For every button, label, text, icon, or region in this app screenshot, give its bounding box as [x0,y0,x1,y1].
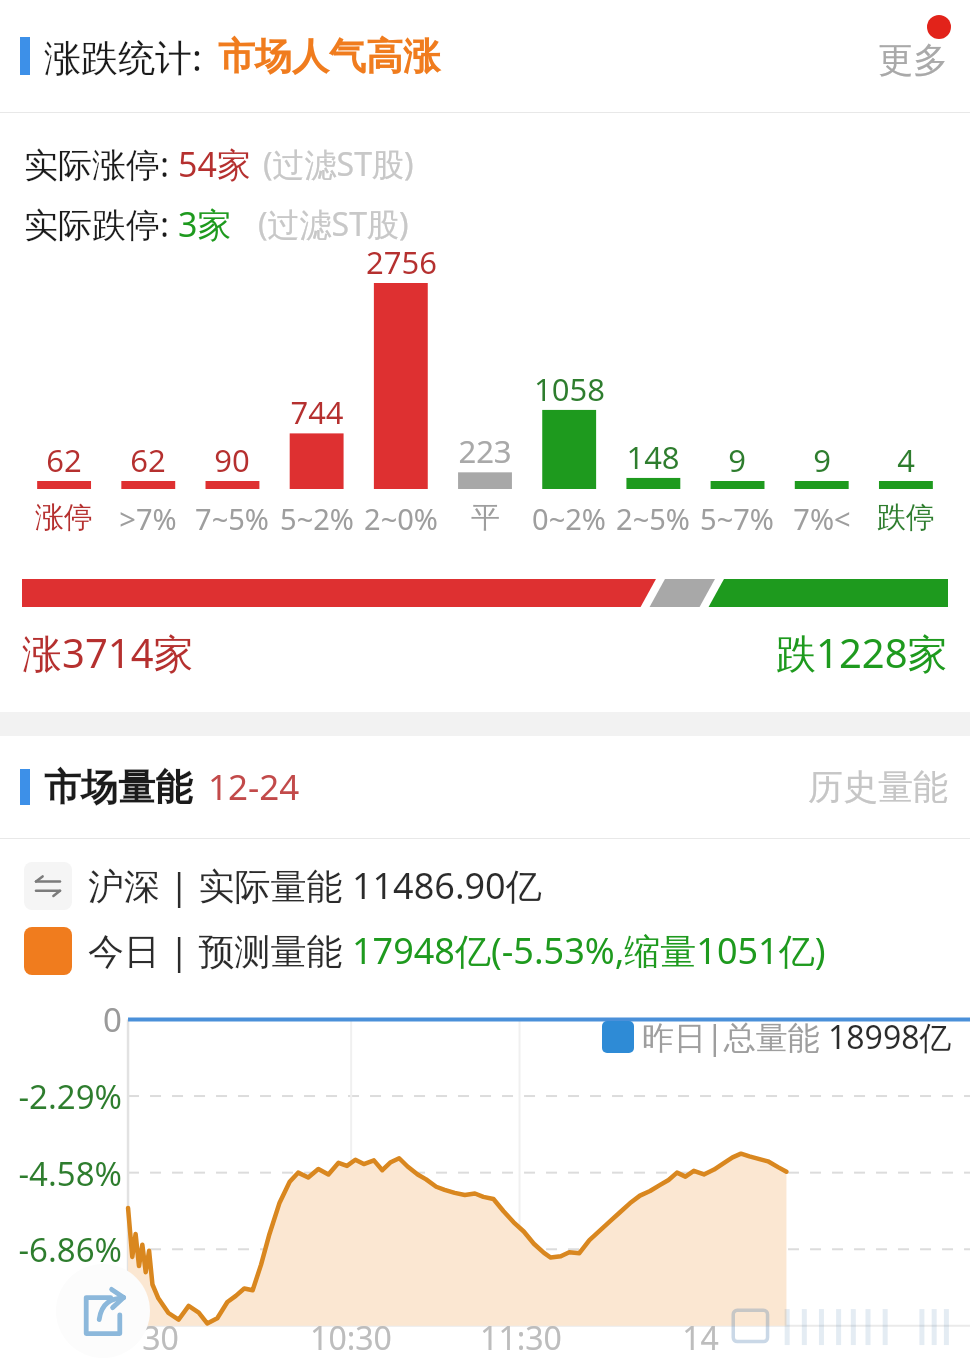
staticText: -6.86% [18,1227,122,1272]
button[interactable]: 平 [443,499,527,536]
staticText: >7% [119,499,177,538]
button[interactable]: 7~5% [190,499,274,538]
staticText: 0~2% [532,499,606,538]
staticText: 7%< [793,499,851,538]
staticText: 实际涨停: [24,141,178,187]
button[interactable]: 跌停 [864,499,948,536]
button[interactable]: 涨跌统计: [0,0,970,112]
staticText: 7~5% [195,499,269,538]
staticText: 更多 [878,38,948,82]
staticText: 涨3714家 [22,625,194,680]
staticText: 62 [46,439,82,481]
button[interactable]: 历史量能 [786,747,970,827]
staticText: 12-24 [208,763,300,811]
staticText: 14 [682,1316,719,1360]
staticText: (过滤ST股) [258,202,409,246]
staticText: 18998亿 [828,1015,952,1059]
button[interactable]: 7%< [780,499,864,538]
staticText: 涨跌统计: [44,31,202,82]
button[interactable]: 实际跌停: [0,201,970,247]
staticText: (过滤ST股) [263,142,414,186]
staticText: 2756 [366,241,437,283]
staticText: 平 [471,499,500,536]
staticText: 11:30 [480,1316,562,1360]
button[interactable]: 昨日|总量能 [602,1015,952,1059]
button[interactable]: >7% [106,499,190,538]
button[interactable]: 2~5% [611,499,695,538]
button[interactable]: 0~2% [527,499,611,538]
button[interactable]: 2~0% [359,499,443,538]
button[interactable]: 5~7% [695,499,779,538]
button[interactable]: 实际涨停: [0,141,970,187]
staticText: 5~2% [280,499,354,538]
staticText: 9 [813,439,831,481]
button[interactable]: 市场量能 [0,736,970,838]
staticText: 4 [897,439,915,481]
staticText: 1058 [534,368,605,410]
button[interactable]: 更多 [856,20,970,100]
staticText: 148 [626,436,680,478]
staticText: -2.29% [18,1074,122,1119]
staticText: 跌停 [877,499,935,536]
staticText: 今日 | 预测量能 [88,926,352,975]
button[interactable]: 分享 [56,1264,150,1358]
staticText: 744 [290,391,344,433]
staticText: 17948亿(-5.53%,缩量1051亿) [352,926,826,975]
staticText: 市场量能 [44,764,192,811]
staticText: 2~5% [616,499,690,538]
button[interactable]: 5~2% [275,499,359,538]
button[interactable]: 涨停 [22,499,106,536]
staticText: 昨日|总量能 [642,1015,828,1059]
staticText: 5~7% [700,499,774,538]
staticText: 9 [728,439,746,481]
staticText: 跌1228家 [776,625,948,680]
staticText: 54家 [178,141,251,187]
staticText: 2~0% [364,499,438,538]
staticText: 0 [103,997,122,1042]
staticText: 沪深 | 实际量能 11486.90亿 [88,861,542,910]
staticText: 10:30 [310,1316,392,1360]
staticText: 62 [130,439,166,481]
button[interactable]: 切换市场 [0,861,970,910]
other: 切换市场 [24,862,72,910]
button[interactable]: 今日 | 预测量能 [0,926,970,975]
staticText: 历史量能 [808,765,948,809]
staticText: 市场人气高涨 [218,33,440,80]
staticText: 223 [458,430,512,472]
staticText: 实际跌停: [24,201,178,247]
staticText: 3家 [178,201,232,247]
staticText: 涨停 [35,499,93,536]
staticText: 90 [214,439,250,481]
staticText: 30 [142,1316,179,1360]
staticText: -4.58% [18,1151,122,1196]
